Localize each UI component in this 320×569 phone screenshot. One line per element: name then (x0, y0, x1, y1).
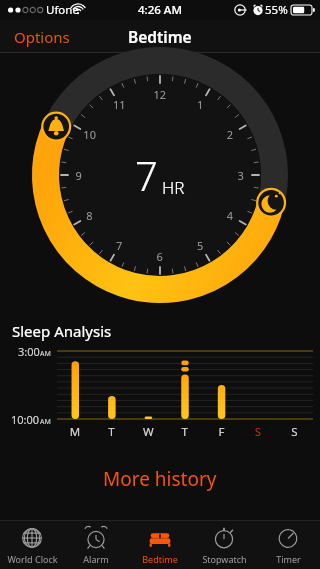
button[interactable]: Options (0, 21, 84, 53)
button[interactable]: Bedtime (128, 521, 192, 569)
button[interactable]: Alarm (64, 521, 128, 569)
button[interactable]: More history (79, 458, 241, 500)
staticText: Ufone (46, 2, 79, 18)
staticText: Bedtime (128, 26, 192, 47)
staticText: World Clock (7, 553, 58, 565)
staticText: Bedtime (142, 553, 178, 565)
button[interactable]: World Clock (0, 521, 64, 569)
button[interactable]: Bedtime schedule dial, 7 hours (0, 57, 320, 305)
button[interactable]: Stopwatch (192, 521, 256, 569)
staticText: More history (103, 466, 217, 492)
staticText: Sleep Analysis (12, 321, 112, 341)
staticText: Timer (276, 553, 301, 565)
button[interactable]: Timer (256, 521, 320, 569)
staticText: 4:26 AM (138, 2, 182, 18)
staticText: 55% (265, 2, 288, 18)
staticText: Alarm (83, 553, 109, 565)
staticText: Stopwatch (202, 553, 247, 565)
button[interactable]: Sleep analysis chart (0, 347, 320, 439)
staticText: Options (14, 27, 70, 47)
